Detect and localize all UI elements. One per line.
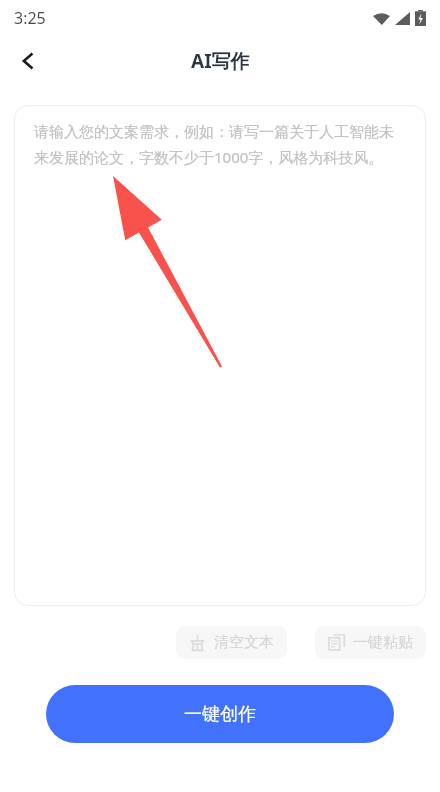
button[interactable]: 请输入您的文案需求，例如：请写一篇关于人工智能未来发展的论文，字数不少于1000… — [14, 105, 426, 606]
button[interactable]: 一键粘贴 — [315, 626, 426, 659]
staticText: 一键粘贴 — [353, 633, 413, 652]
staticText: AI写作 — [191, 48, 250, 74]
staticText: 请输入您的文案需求，例如：请写一篇关于人工智能未来发展的论文，字数不少于1000… — [34, 123, 408, 167]
button[interactable]: 清空文本 — [176, 626, 287, 659]
button[interactable]: Back — [6, 39, 50, 83]
staticText: 清空文本 — [214, 633, 274, 652]
staticText: 一键创作 — [184, 703, 256, 726]
button[interactable]: 一键创作 — [46, 685, 394, 743]
staticText: 3:25 — [14, 7, 46, 29]
